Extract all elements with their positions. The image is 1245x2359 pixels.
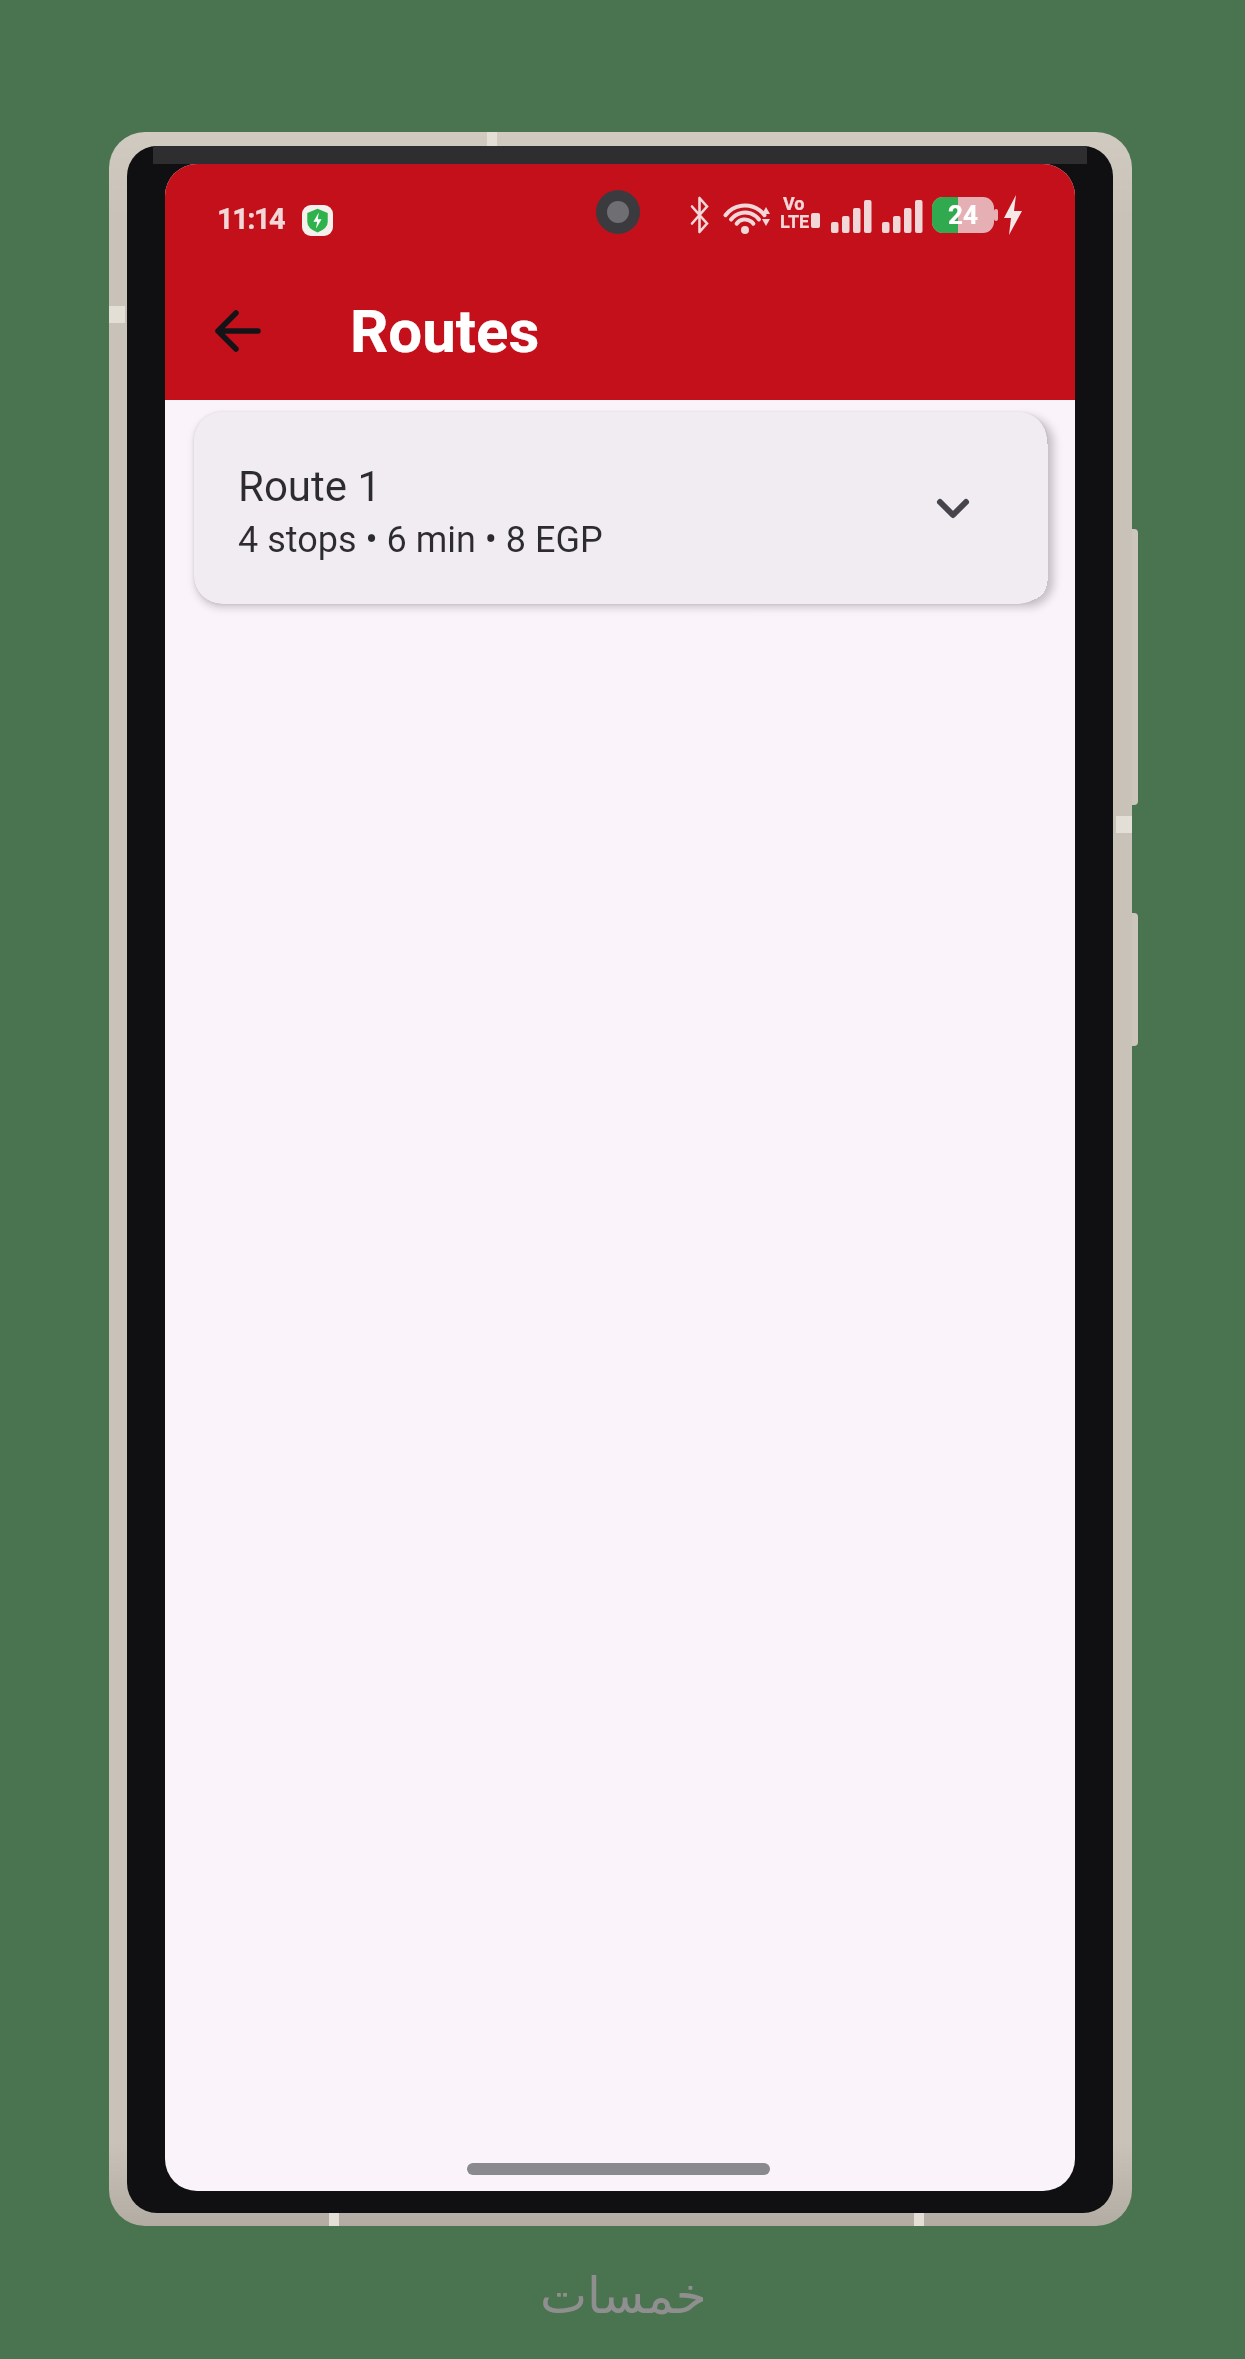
- staticText: Route 1: [238, 462, 382, 511]
- staticText: Routes: [350, 296, 540, 366]
- staticText: 11:14: [217, 202, 285, 232]
- button[interactable]: Route 1: [194, 412, 1047, 604]
- staticText: Vo: [783, 193, 805, 214]
- button[interactable]: [205, 298, 271, 364]
- staticText: LTE: [780, 211, 810, 232]
- staticText: خمسات: [540, 2267, 707, 2325]
- staticText: 24: [948, 200, 978, 230]
- staticText: 4 stops • 6 min • 8 EGP: [238, 519, 603, 561]
